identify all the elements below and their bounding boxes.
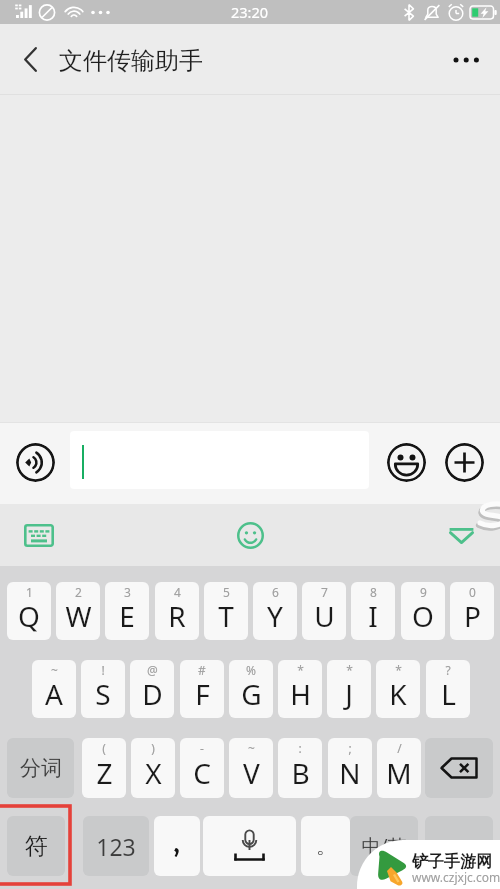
staticText: Y [267,597,283,635]
staticText: * [297,662,304,678]
button[interactable]: Backspace [425,738,493,798]
staticText: 。 [316,834,336,859]
staticText: 1 [26,584,33,600]
staticText: O [412,597,434,635]
staticText: 123 [96,831,136,862]
staticText: ~ [248,740,255,756]
staticText: www.czjxjc.com [412,869,500,885]
staticText: 符 [25,832,48,861]
staticText: S [95,675,111,713]
button[interactable]: Space [203,816,296,876]
staticText: T [218,597,234,635]
staticText: U [314,597,335,635]
staticText: @ [147,662,158,678]
button[interactable]: 5 [204,582,248,640]
staticText: 7 [321,584,328,600]
button[interactable]: - [180,738,224,798]
button[interactable]: ! [81,660,125,718]
staticText: 铲子手游网 [412,852,492,872]
button[interactable]: ~ [229,738,273,798]
button[interactable]: Comma [154,816,200,876]
staticText: 4 [174,584,181,600]
staticText: K [389,675,407,713]
button[interactable]: 4 [155,582,199,640]
button[interactable]: More options [434,24,500,95]
staticText: C [193,754,211,792]
staticText: ! [101,662,105,678]
staticText: : [298,740,302,756]
button[interactable]: * [278,660,322,718]
button[interactable]: 3 [105,582,149,640]
staticText: G [241,675,262,713]
button[interactable]: Hide keyboard [439,514,483,558]
button[interactable]: / [377,738,421,798]
staticText: Z [96,754,113,792]
button[interactable] [425,816,493,876]
staticText: 文件传输助手 [59,46,203,76]
staticText: ; [348,740,352,756]
button[interactable]: : [278,738,322,798]
staticText: M [386,754,412,792]
staticText: 分词 [20,755,62,781]
staticText: L [441,675,456,713]
staticText: 3 [124,584,131,600]
button[interactable] [70,431,369,489]
button[interactable]: 123 [83,816,149,876]
staticText: ~ [51,662,58,678]
button[interactable]: ; [328,738,372,798]
staticText: I [368,597,378,635]
button[interactable]: Voice input [16,443,55,482]
button[interactable]: 符 [7,816,65,876]
staticText: R [168,597,186,635]
button[interactable]: ? [426,660,470,718]
button[interactable]: 9 [401,582,445,640]
button[interactable]: # [180,660,224,718]
button[interactable]: * [327,660,371,718]
staticText: H [290,675,311,713]
staticText: / [397,740,402,756]
button[interactable]: 2 [56,582,100,640]
staticText: - [200,740,204,756]
button[interactable]: * [376,660,420,718]
button[interactable]: Emoji panel [228,513,272,557]
staticText: ) [151,740,155,756]
button[interactable]: Keyboard [14,517,64,553]
button[interactable]: 7 [302,582,346,640]
button[interactable]: 分词 [7,738,74,798]
staticText: 2 [75,584,82,600]
button[interactable]: 0 [450,582,494,640]
staticText: 5 [223,584,230,600]
staticText: Q [18,597,40,635]
staticText: F [195,675,210,713]
staticText: E [119,597,135,635]
button[interactable]: 1 [7,582,51,640]
staticText: * [395,662,402,678]
staticText: N [339,754,361,792]
staticText: 23:20 [231,2,269,22]
staticText: W [65,597,92,635]
staticText: A [45,675,63,713]
button[interactable]: % [229,660,273,718]
button[interactable]: Emoji [387,443,426,482]
button[interactable]: 。 [301,816,350,876]
staticText: P [464,597,481,635]
staticText: D [142,675,163,713]
staticText: J [345,675,353,713]
button[interactable]: More functions [445,443,484,482]
staticText: # [198,662,206,678]
staticText: V [243,754,260,792]
button[interactable]: 中/英 [350,816,418,876]
staticText: B [291,754,310,792]
button[interactable]: @ [130,660,174,718]
staticText: ( [102,740,106,756]
button[interactable]: 8 [351,582,395,640]
button[interactable]: ) [131,738,175,798]
staticText: 0 [469,584,476,600]
staticText: ? [445,662,451,678]
staticText: 8 [370,584,377,600]
button[interactable]: 6 [253,582,297,640]
button[interactable]: ~ [32,660,76,718]
button[interactable]: Back [5,24,55,95]
staticText: 9 [420,584,427,600]
button[interactable]: ( [82,738,126,798]
